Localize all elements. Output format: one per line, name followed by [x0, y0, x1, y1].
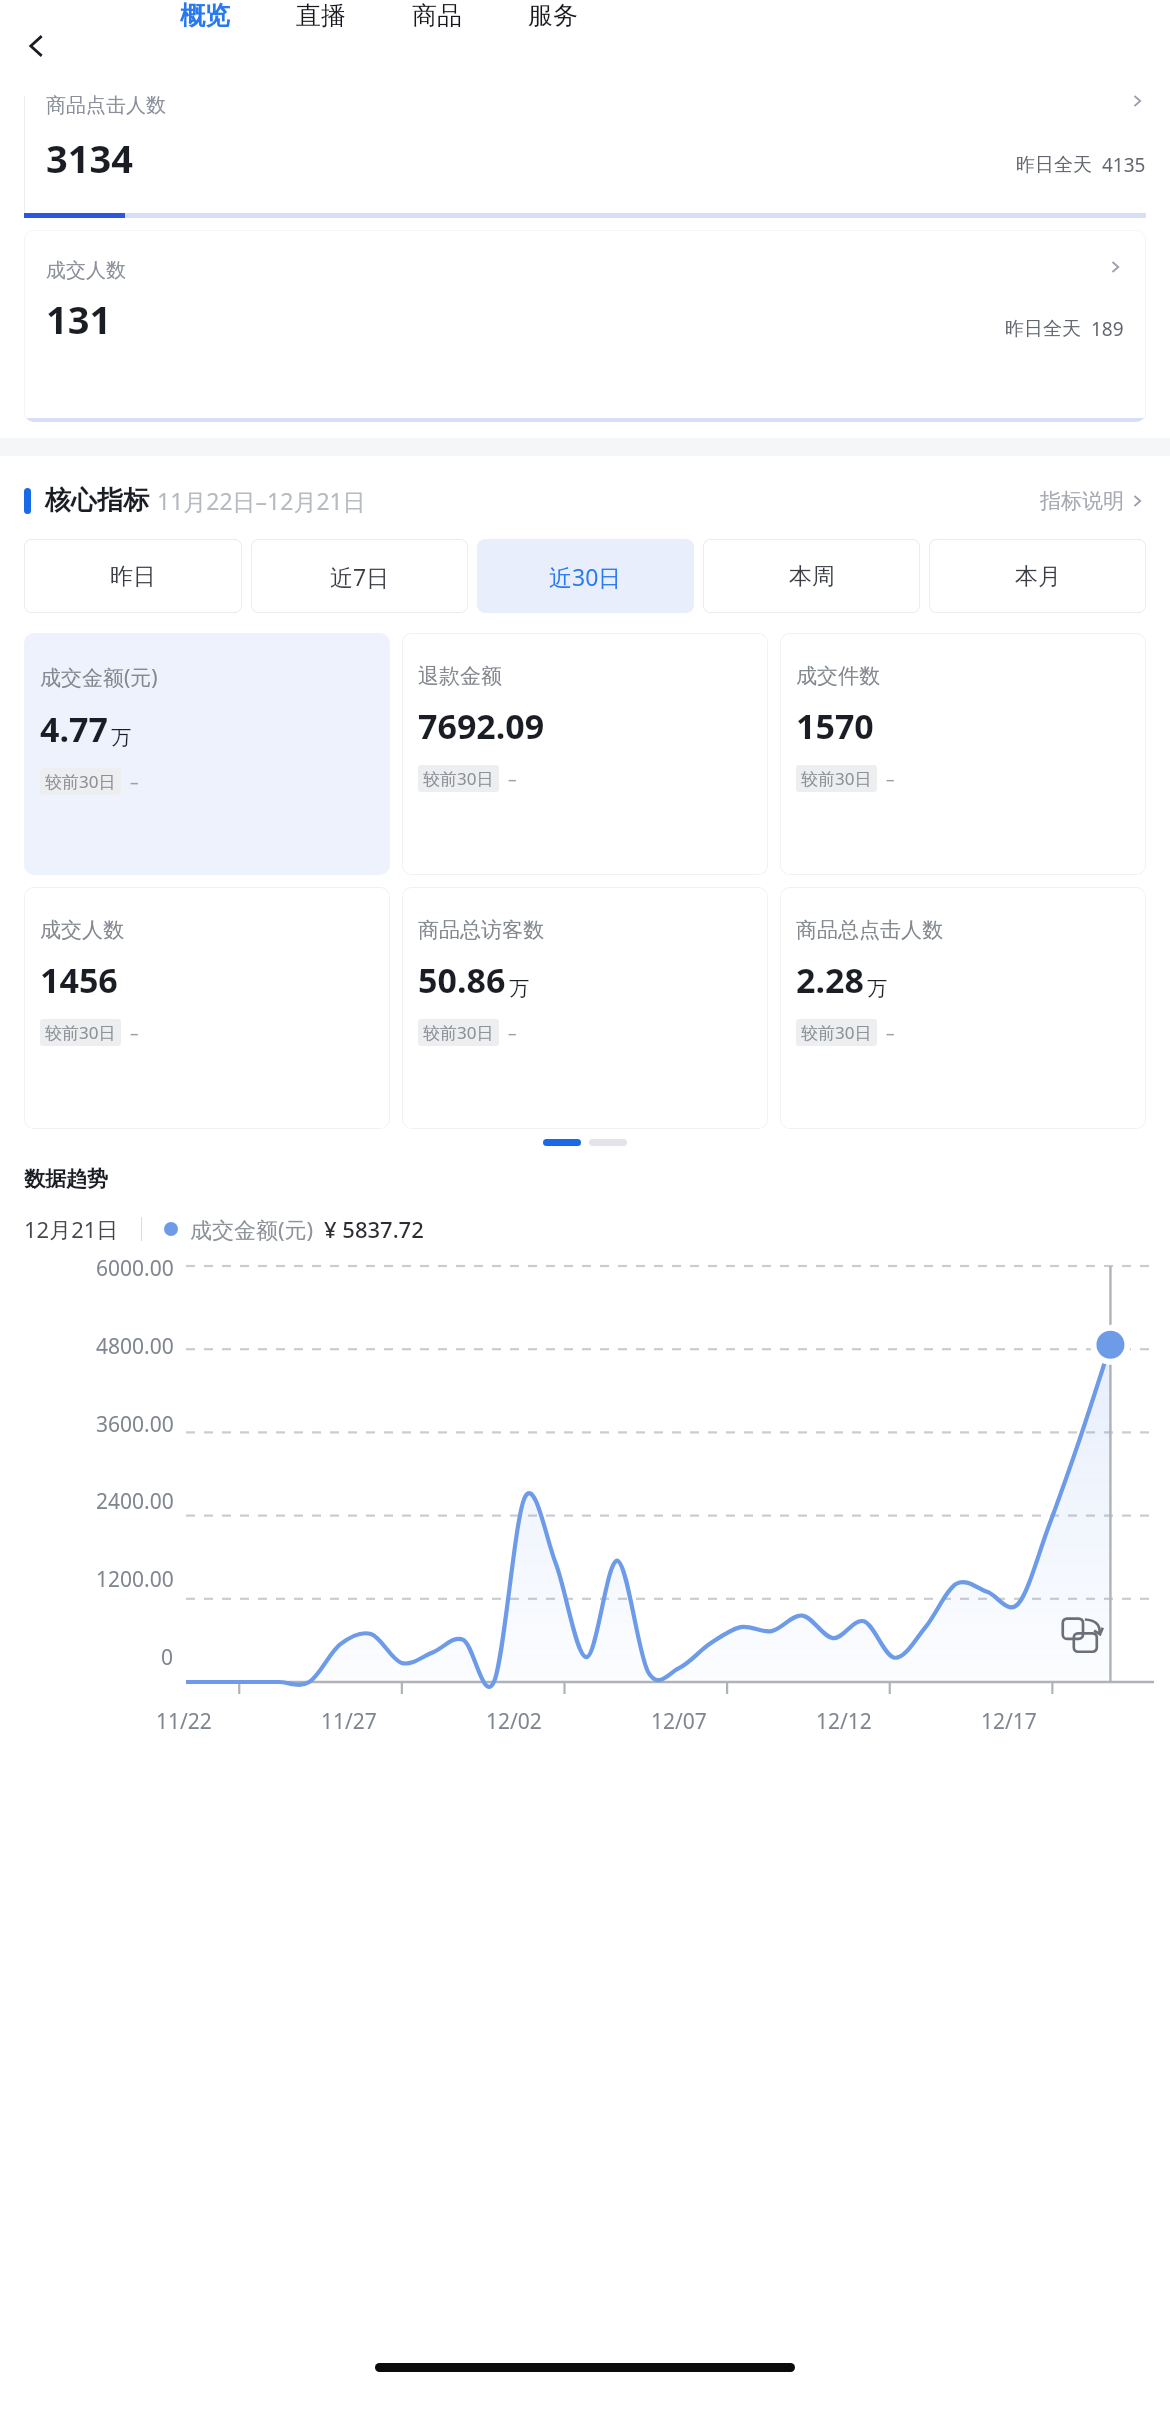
staticText: 50.86 — [418, 957, 506, 1003]
staticText: 成交金额(元) — [190, 1214, 314, 1244]
staticText: 7692.09 — [418, 703, 545, 749]
staticText: 131 — [46, 293, 112, 345]
staticText: 近7日 — [330, 561, 390, 592]
staticText: 万 — [111, 725, 131, 750]
staticText: 4800.00 — [96, 1332, 174, 1361]
staticText: 3134 — [46, 132, 133, 184]
staticText: 1456 — [40, 957, 118, 1003]
staticText: 昨日全天 — [1016, 153, 1092, 177]
button[interactable]: 概览 — [180, 0, 230, 31]
staticText: 12/02 — [486, 1707, 542, 1736]
staticText: 较前30日 — [423, 1021, 494, 1044]
staticText: 商品点击人数 — [46, 93, 166, 118]
staticText: – — [886, 767, 895, 790]
button[interactable]: 昨日 — [24, 539, 242, 613]
button[interactable]: 核心指标 — [24, 484, 1146, 517]
staticText: 本月 — [1015, 562, 1061, 591]
staticText: – — [886, 1021, 895, 1044]
staticText: 万 — [867, 976, 887, 1001]
staticText: 189 — [1091, 316, 1124, 342]
button[interactable]: 成交人数 — [24, 230, 1146, 422]
staticText: – — [508, 1021, 517, 1044]
staticText: 11/22 — [156, 1707, 212, 1736]
button[interactable]: 商品总访客数 — [402, 887, 768, 1129]
staticText: 1200.00 — [96, 1565, 174, 1594]
staticText: 11月22日–12月21日 — [157, 485, 366, 516]
staticText: 成交人数 — [40, 917, 124, 943]
staticText: 4.77 — [40, 706, 108, 752]
staticText: 指标说明 — [1040, 488, 1124, 514]
staticText: 2.28 — [796, 957, 864, 1003]
staticText: 6000.00 — [96, 1254, 174, 1283]
button[interactable]: 商品 — [412, 0, 462, 31]
staticText: 12/12 — [816, 1707, 872, 1736]
staticText: 0 — [161, 1643, 174, 1672]
staticText: 较前30日 — [45, 1021, 116, 1044]
staticText: 较前30日 — [45, 770, 116, 793]
staticText: 12月21日 — [24, 1214, 119, 1244]
button[interactable]: 成交人数 — [24, 887, 390, 1129]
button[interactable]: Back — [10, 19, 64, 73]
button[interactable]: 近7日 — [251, 539, 468, 613]
staticText: 较前30日 — [801, 1021, 872, 1044]
staticText: 直播 — [296, 0, 346, 31]
button[interactable]: 近30日 — [477, 539, 694, 613]
button[interactable]: 成交件数 — [780, 633, 1146, 875]
staticText: 11/27 — [321, 1707, 377, 1736]
button[interactable]: 成交金额(元) — [24, 633, 390, 875]
button[interactable]: 退款金额 — [402, 633, 768, 875]
button[interactable]: Fullscreen chart — [1060, 1614, 1106, 1660]
staticText: 退款金额 — [418, 663, 502, 689]
staticText: 万 — [509, 976, 529, 1001]
staticText: – — [508, 767, 517, 790]
staticText: 数据趋势 — [24, 1166, 108, 1192]
staticText: ¥ 5837.72 — [324, 1214, 424, 1244]
staticText: 4135 — [1102, 152, 1146, 178]
button[interactable]: 本周 — [703, 539, 920, 613]
staticText: 2400.00 — [96, 1487, 174, 1516]
staticText: 12/17 — [981, 1707, 1037, 1736]
staticText: 商品总访客数 — [418, 917, 544, 943]
staticText: 商品总点击人数 — [796, 917, 943, 943]
staticText: 12/07 — [651, 1707, 707, 1736]
staticText: 昨日全天 — [1005, 317, 1081, 341]
staticText: 概览 — [180, 0, 230, 31]
button[interactable]: 直播 — [296, 0, 346, 31]
button[interactable]: 本月 — [929, 539, 1146, 613]
staticText: – — [130, 1021, 139, 1044]
staticText: – — [130, 770, 139, 793]
staticText: 核心指标 — [45, 484, 149, 517]
staticText: 近30日 — [549, 561, 622, 592]
staticText: 1570 — [796, 703, 874, 749]
staticText: 3600.00 — [96, 1410, 174, 1439]
staticText: 本周 — [789, 562, 835, 591]
staticText: 成交件数 — [796, 663, 880, 689]
staticText: 昨日 — [110, 562, 156, 591]
staticText: 较前30日 — [423, 767, 494, 790]
button[interactable]: 服务 — [528, 0, 578, 31]
staticText: 较前30日 — [801, 767, 872, 790]
staticText: 商品 — [412, 0, 462, 31]
staticText: 成交人数 — [46, 258, 126, 283]
staticText: 成交金额(元) — [40, 663, 158, 692]
button[interactable]: 商品总点击人数 — [780, 887, 1146, 1129]
staticText: 服务 — [528, 0, 578, 31]
